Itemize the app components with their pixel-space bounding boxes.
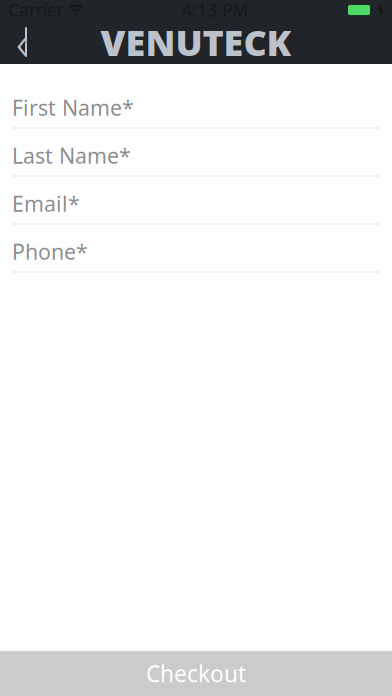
button[interactable]: Checkout (0, 651, 392, 696)
button[interactable]: First Name* (0, 84, 392, 132)
staticText: Carrier (8, 0, 64, 21)
button[interactable]: Email* (0, 180, 392, 228)
staticText: 4:13 PM (182, 0, 248, 21)
staticText: Last Name* (12, 141, 131, 170)
button[interactable]: Back (0, 20, 44, 64)
staticText: ‹ (16, 12, 28, 72)
staticText: Checkout (146, 658, 246, 688)
staticText: VENUTECK (100, 18, 291, 66)
button[interactable]: Last Name* (0, 132, 392, 180)
staticText: First Name* (12, 93, 134, 122)
staticText: Phone* (12, 237, 88, 266)
button[interactable]: Phone* (0, 228, 392, 276)
staticText: Email* (12, 189, 80, 218)
